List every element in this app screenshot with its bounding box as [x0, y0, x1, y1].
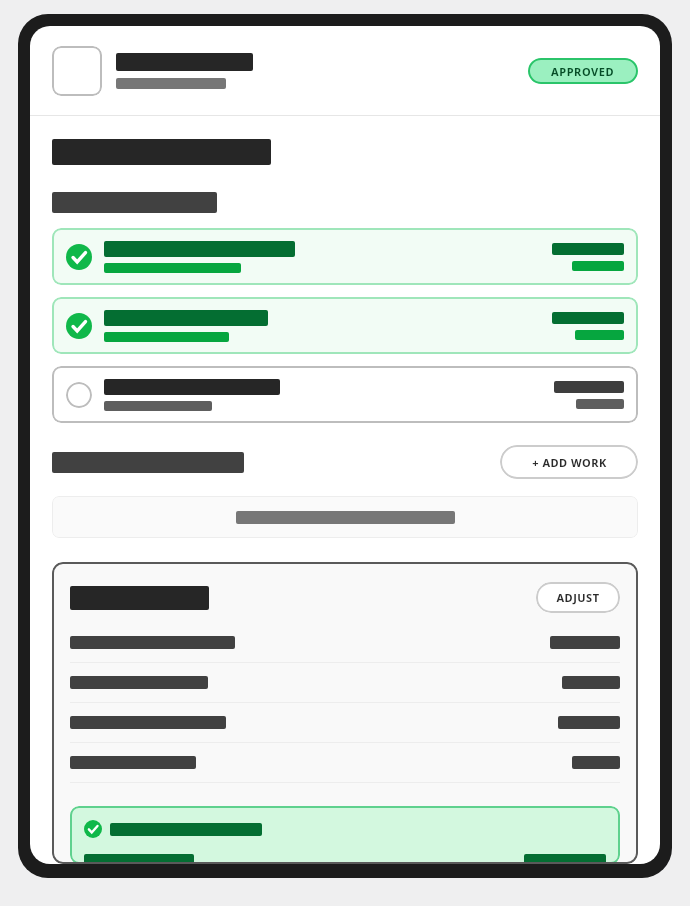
button[interactable]: APPROVED	[528, 58, 638, 84]
button[interactable]	[52, 297, 638, 354]
button[interactable]	[52, 496, 638, 538]
button[interactable]: Job thumbnail	[52, 46, 102, 96]
staticText: ADJUST	[556, 590, 600, 605]
button[interactable]: ADJUST	[536, 582, 620, 613]
button[interactable]	[52, 366, 638, 423]
button[interactable]	[52, 228, 638, 285]
button[interactable]: + ADD WORK	[500, 445, 638, 479]
staticText: + ADD WORK	[532, 455, 607, 470]
staticText: APPROVED	[551, 64, 615, 79]
